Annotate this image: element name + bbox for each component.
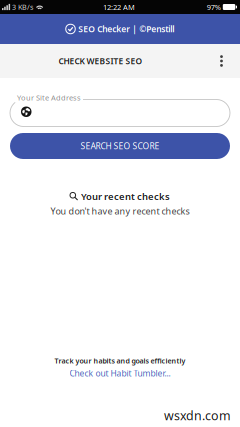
staticText: Your Site Address xyxy=(17,92,81,103)
staticText: Your recent checks xyxy=(81,190,170,203)
staticText: 3 KB/s xyxy=(10,2,35,12)
staticText: You don't have any recent checks xyxy=(50,205,189,217)
staticText: Track your habits and goals efficiently xyxy=(54,356,185,365)
staticText: 12:22 AM xyxy=(103,2,135,12)
staticText: SEO Checker | ©Penstill xyxy=(78,23,174,35)
button[interactable]: SEARCH SEO SCORE xyxy=(10,133,230,159)
button[interactable]: More options xyxy=(203,44,240,78)
staticText: Check out Habit Tumbler... xyxy=(69,367,170,379)
staticText: wsxdn.com xyxy=(164,407,231,424)
staticText: SEARCH SEO SCORE xyxy=(80,140,159,152)
staticText: 97% xyxy=(207,2,223,12)
staticText: CHECK WEBSITE SEO xyxy=(58,55,142,67)
button[interactable]: Check out Habit Tumbler... xyxy=(69,365,170,379)
